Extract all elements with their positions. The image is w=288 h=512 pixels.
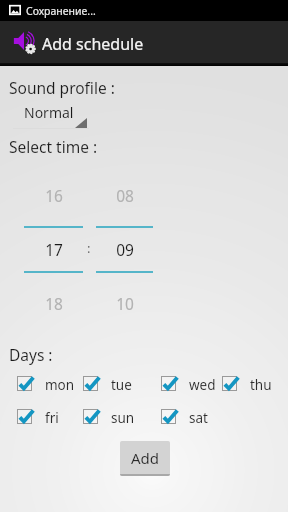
staticText: Select time : — [9, 136, 98, 157]
button[interactable]: fri — [17, 409, 59, 425]
staticText: Sound profile : — [9, 77, 115, 98]
button[interactable]: 10 — [96, 293, 153, 315]
staticText: 18 — [45, 293, 63, 314]
button[interactable]: 16 — [24, 185, 83, 207]
button[interactable]: wed — [161, 376, 216, 392]
button[interactable]: tue — [83, 376, 132, 392]
staticText: thu — [250, 376, 272, 392]
staticText: 09 — [116, 239, 134, 260]
staticText: mon — [45, 376, 75, 392]
staticText: Normal — [24, 103, 74, 122]
button[interactable]: thu — [222, 376, 272, 392]
button[interactable]: 08 — [96, 185, 153, 207]
staticText: tue — [111, 376, 132, 392]
staticText: sat — [189, 409, 208, 425]
staticText: 08 — [116, 185, 134, 206]
button[interactable]: 18 — [24, 293, 83, 315]
staticText: Days : — [9, 344, 53, 365]
button[interactable]: mon — [17, 376, 75, 392]
staticText: : — [87, 239, 91, 257]
button[interactable]: Normal — [13, 100, 89, 130]
staticText: Add — [131, 448, 160, 468]
staticText: 10 — [116, 293, 134, 314]
staticText: fri — [45, 409, 59, 425]
staticText: 17 — [45, 239, 63, 260]
button[interactable]: Add — [120, 441, 170, 476]
button[interactable]: sun — [83, 409, 135, 425]
staticText: sun — [111, 409, 135, 425]
staticText: wed — [189, 376, 216, 392]
staticText: Add schedule — [42, 33, 144, 55]
staticText: Сохранение... — [26, 4, 96, 18]
staticText: 16 — [45, 185, 63, 206]
button[interactable]: sat — [161, 409, 208, 425]
